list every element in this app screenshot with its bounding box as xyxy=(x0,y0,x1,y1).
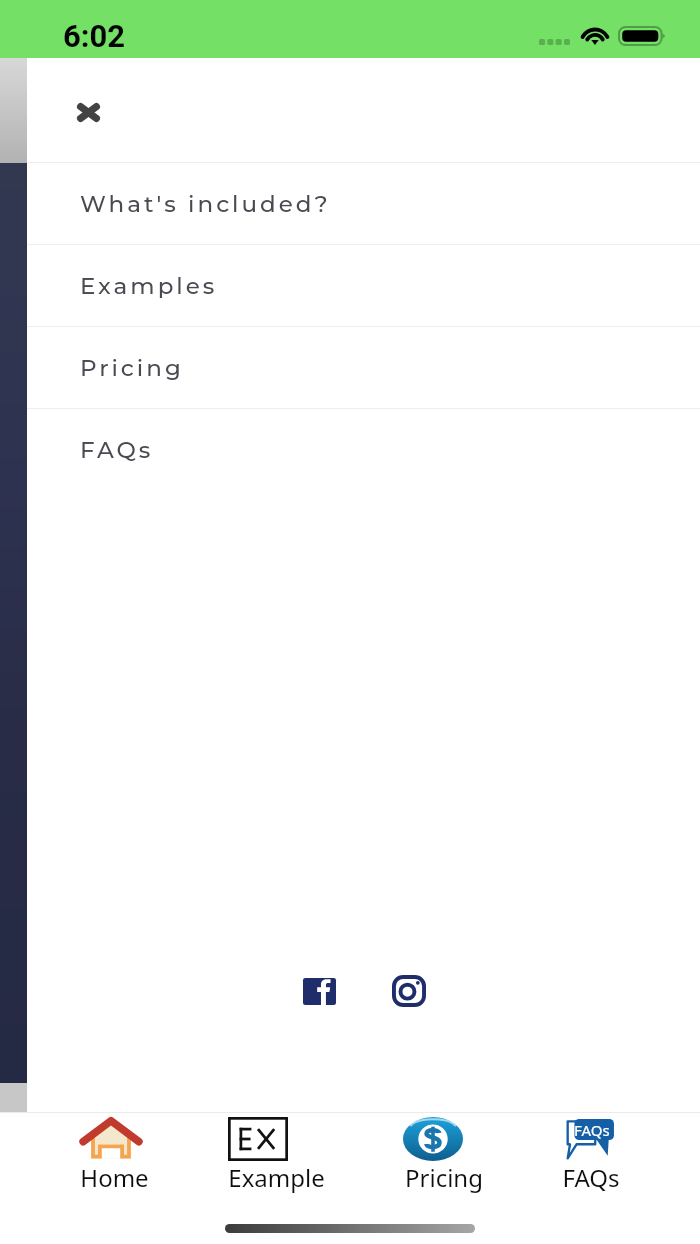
staticText: What's included? xyxy=(80,190,331,218)
button[interactable]: Example xyxy=(228,1113,325,1201)
staticText: 6:02 xyxy=(63,18,126,54)
staticText: Example xyxy=(228,1161,325,1194)
button[interactable]: Examples xyxy=(27,245,700,326)
button[interactable]: Facebook xyxy=(295,967,343,1015)
button[interactable]: Instagram xyxy=(385,967,433,1015)
button[interactable]: What's included? xyxy=(27,163,700,244)
button[interactable]: FAQs xyxy=(562,1113,620,1201)
staticText: FAQs xyxy=(80,436,154,464)
button[interactable]: Home xyxy=(80,1113,149,1201)
staticText: Examples xyxy=(80,272,218,300)
button[interactable]: FAQs xyxy=(27,409,700,490)
staticText: FAQs xyxy=(574,1120,610,1140)
button[interactable]: Pricing xyxy=(405,1113,483,1201)
staticText: FAQs xyxy=(562,1161,620,1194)
button[interactable]: Close menu xyxy=(64,88,112,136)
staticText: Pricing xyxy=(405,1161,483,1194)
staticText: Pricing xyxy=(80,354,184,382)
button[interactable]: Pricing xyxy=(27,327,700,408)
staticText: Home xyxy=(80,1161,149,1194)
